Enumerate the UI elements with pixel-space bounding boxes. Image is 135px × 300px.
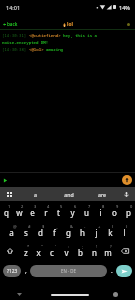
staticText: s bbox=[24, 227, 28, 238]
button[interactable]: k bbox=[103, 221, 117, 241]
button[interactable]: Keyboard toolbar bbox=[4, 189, 14, 199]
staticText: z bbox=[24, 247, 28, 258]
staticText: and bbox=[64, 191, 74, 198]
staticText: h bbox=[80, 227, 85, 238]
button[interactable]: q bbox=[0, 201, 13, 221]
staticText: t bbox=[57, 207, 60, 218]
staticText: # bbox=[28, 224, 31, 229]
staticText: 4 bbox=[47, 204, 50, 209]
staticText: & bbox=[70, 224, 73, 229]
button[interactable]: z bbox=[19, 241, 32, 261]
button[interactable]: Backspace bbox=[115, 241, 135, 261]
staticText: are bbox=[98, 191, 106, 198]
staticText: EN · DE bbox=[61, 268, 76, 274]
button[interactable]: h bbox=[75, 221, 89, 241]
staticText: l bbox=[123, 227, 126, 238]
staticText: m bbox=[104, 247, 112, 258]
button[interactable]: Send bbox=[122, 175, 132, 185]
staticText: a bbox=[9, 227, 14, 238]
staticText: back bbox=[7, 21, 18, 27]
staticText: k bbox=[108, 227, 113, 238]
button[interactable]: d bbox=[33, 221, 47, 241]
button[interactable]: b bbox=[73, 241, 87, 261]
button[interactable]: Hide keyboard bbox=[13, 288, 25, 300]
button[interactable]: Connection status bbox=[123, 19, 133, 29]
staticText: u bbox=[84, 207, 89, 218]
button[interactable]: m bbox=[101, 241, 115, 261]
staticText: + bbox=[98, 224, 101, 229]
staticText: r bbox=[44, 207, 48, 218]
button[interactable]: u bbox=[79, 201, 93, 221]
button[interactable]: n bbox=[87, 241, 101, 261]
button[interactable]: a bbox=[18, 187, 52, 201]
button[interactable]: . bbox=[107, 261, 116, 281]
button[interactable]: , bbox=[21, 261, 30, 281]
staticText: " bbox=[41, 244, 43, 249]
button[interactable]: Shift bbox=[0, 241, 19, 261]
staticText: 5 bbox=[60, 204, 63, 209]
button[interactable]: f bbox=[47, 221, 61, 241]
button[interactable]: e bbox=[26, 201, 39, 221]
button[interactable]: c bbox=[45, 241, 59, 261]
staticText: 3 bbox=[34, 204, 37, 209]
staticText: a bbox=[34, 191, 37, 198]
button[interactable]: s bbox=[19, 221, 33, 241]
staticText: amazing bbox=[46, 47, 63, 53]
staticText: @ bbox=[13, 224, 17, 229]
button[interactable]: are bbox=[85, 187, 118, 201]
staticText: ?123 bbox=[7, 268, 18, 275]
staticText: ' bbox=[55, 244, 56, 249]
staticText: w bbox=[16, 207, 23, 218]
staticText: : bbox=[68, 244, 70, 249]
staticText: d bbox=[38, 227, 43, 238]
staticText: o bbox=[112, 207, 117, 218]
staticText: ) bbox=[126, 224, 128, 229]
button[interactable]: r bbox=[39, 201, 52, 221]
staticText: y bbox=[70, 207, 75, 218]
button[interactable]: i bbox=[93, 201, 107, 221]
staticText: 14:01 bbox=[6, 4, 21, 11]
button[interactable]: x bbox=[32, 241, 45, 261]
button[interactable]: t bbox=[52, 201, 65, 221]
staticText: 9 bbox=[116, 204, 119, 209]
button[interactable]: j bbox=[89, 221, 103, 241]
staticText: hey, this is a bbox=[63, 33, 97, 39]
button[interactable]: back bbox=[1, 19, 20, 29]
staticText: 2 bbox=[21, 204, 24, 209]
button[interactable]: Recent apps bbox=[109, 288, 121, 300]
button[interactable]: EN · DE bbox=[30, 265, 107, 277]
button[interactable]: p bbox=[121, 201, 135, 221]
staticText: b bbox=[78, 247, 83, 258]
staticText: 1 bbox=[8, 204, 11, 209]
staticText: * bbox=[27, 244, 30, 249]
button[interactable]: Voice input bbox=[121, 189, 131, 199]
staticText: , bbox=[25, 266, 27, 275]
staticText: ! bbox=[96, 244, 98, 249]
staticText: p bbox=[126, 207, 131, 218]
staticText: 0 bbox=[130, 204, 133, 209]
button[interactable]: l bbox=[117, 221, 131, 241]
button[interactable]: and bbox=[52, 187, 85, 201]
staticText: _ bbox=[56, 224, 58, 229]
staticText: noise-encrypted DM! bbox=[2, 40, 49, 46]
button[interactable]: w bbox=[13, 201, 26, 221]
button[interactable]: Enter bbox=[116, 265, 132, 277]
staticText: <@cutiefiend> bbox=[29, 33, 63, 39]
button[interactable]: y bbox=[65, 201, 79, 221]
button[interactable]: o bbox=[107, 201, 121, 221]
staticText: n bbox=[92, 247, 97, 258]
staticText: 6 bbox=[74, 204, 77, 209]
staticText: v bbox=[64, 247, 69, 258]
button[interactable]: a bbox=[4, 221, 19, 241]
staticText: 8 bbox=[102, 204, 105, 209]
button[interactable]: ?123 bbox=[3, 265, 21, 277]
staticText: [14:30:31] bbox=[2, 33, 29, 39]
staticText: q bbox=[4, 207, 9, 218]
staticText: ( bbox=[112, 224, 114, 229]
staticText: 14% bbox=[119, 4, 130, 11]
staticText: g bbox=[66, 227, 71, 238]
staticText: x bbox=[36, 247, 41, 258]
button[interactable]: v bbox=[59, 241, 73, 261]
button[interactable]: g bbox=[61, 221, 75, 241]
staticText: lol bbox=[67, 21, 73, 28]
